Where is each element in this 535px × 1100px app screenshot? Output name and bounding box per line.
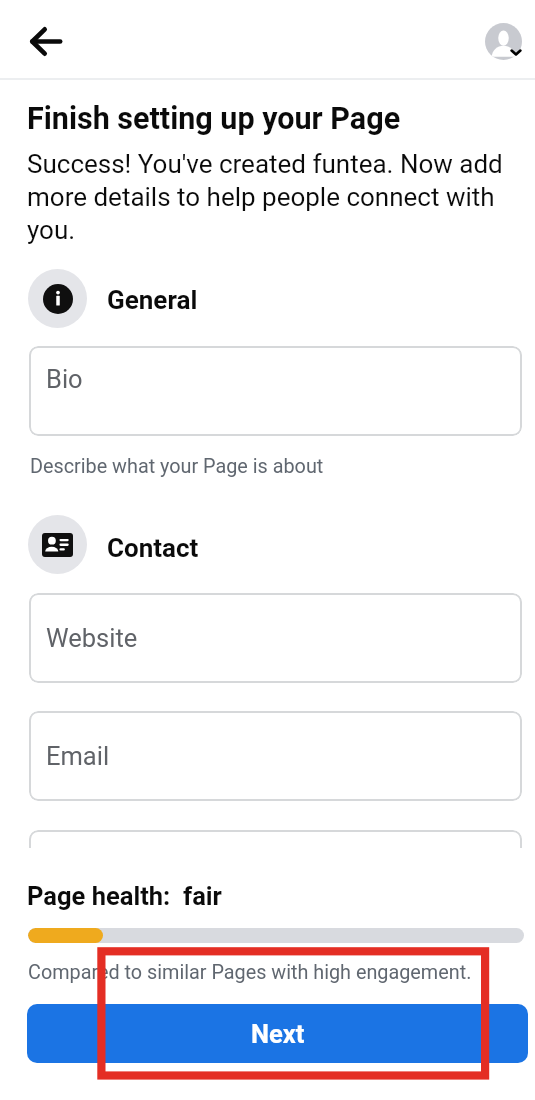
staticText: Contact <box>107 533 199 563</box>
staticText: Email <box>46 741 110 771</box>
button[interactable]: Website <box>29 593 522 683</box>
button[interactable]: Back <box>10 21 81 62</box>
staticText: Next <box>251 1019 305 1049</box>
staticText: Success! You've created funtea. Now add … <box>27 149 535 245</box>
button[interactable]: Next <box>27 1004 528 1063</box>
staticText: Website <box>46 623 138 653</box>
button[interactable]: Email <box>29 711 522 801</box>
staticText: Describe what your Page is about <box>30 455 324 478</box>
staticText: Bio <box>46 364 83 394</box>
button[interactable]: Phone <box>29 830 522 848</box>
staticText: Compared to similar Pages with high enga… <box>28 961 472 984</box>
staticText: Finish setting up your Page <box>27 101 401 137</box>
button[interactable]: Account menu <box>480 18 528 64</box>
staticText: General <box>107 285 198 315</box>
button[interactable]: Bio <box>29 346 522 436</box>
staticText: Page health: fair <box>27 881 222 911</box>
